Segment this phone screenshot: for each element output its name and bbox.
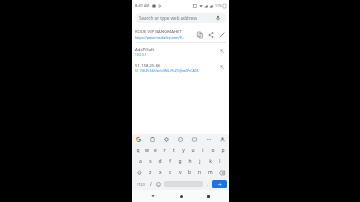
staticText: g <box>178 158 182 165</box>
button[interactable]: Share <box>205 29 216 40</box>
staticText: 11% <box>215 3 222 8</box>
staticText: c <box>169 169 172 176</box>
button[interactable]: c <box>165 167 175 178</box>
button[interactable]: s <box>145 156 155 167</box>
button[interactable]: More options <box>205 136 212 143</box>
button[interactable]: n <box>195 167 205 178</box>
staticText: w <box>145 147 149 154</box>
button[interactable]: v <box>175 167 185 178</box>
staticText: AM <box>144 3 150 8</box>
button[interactable]: Clipboard <box>149 136 156 143</box>
button[interactable]: Insert suggestion <box>218 63 226 71</box>
staticText: 51.158.25.66 <box>135 62 161 68</box>
staticText: j <box>199 158 201 165</box>
staticText: n <box>198 169 202 176</box>
staticText: u <box>191 147 195 154</box>
staticText: https://www.mediafire.com/fi... <box>135 35 185 40</box>
button[interactable]: AdsPiSoft <box>132 43 229 59</box>
staticText: 8:41 <box>135 3 143 8</box>
button[interactable]: a <box>136 156 145 167</box>
staticText: d <box>158 158 162 165</box>
staticText: ••• <box>207 137 211 142</box>
staticText: i <box>202 147 204 154</box>
button[interactable]: Home <box>175 190 187 202</box>
button[interactable]: m <box>205 167 215 178</box>
staticText: v <box>179 169 182 176</box>
staticText: b <box>188 169 192 176</box>
button[interactable]: i <box>198 145 208 156</box>
button[interactable]: f <box>165 156 175 167</box>
staticText: AdsPiSoft <box>135 46 155 52</box>
button[interactable]: Insert suggestion <box>218 47 226 55</box>
button[interactable]: Back <box>147 190 159 202</box>
staticText: t <box>173 147 175 154</box>
button[interactable]: Google search <box>135 136 142 143</box>
button[interactable]: t <box>169 145 178 156</box>
staticText: 10.0.0.1 <box>135 53 147 57</box>
staticText: p <box>221 147 225 154</box>
button[interactable]: Emoji <box>154 179 163 189</box>
staticText: h <box>188 158 192 165</box>
staticText: Search or type web address <box>139 15 198 21</box>
staticText: y <box>182 147 185 154</box>
button[interactable]: Edit <box>216 29 227 40</box>
button[interactable]: d <box>155 156 165 167</box>
staticText: KODE VIP BANGMAHET <box>135 28 182 34</box>
button[interactable]: 51.158.25.66 <box>132 59 229 75</box>
button[interactable]: y <box>178 145 188 156</box>
button[interactable]: Stickers <box>177 136 184 143</box>
staticText: x <box>159 169 162 176</box>
button[interactable]: p <box>218 145 228 156</box>
staticText: r <box>163 147 166 154</box>
button[interactable]: x <box>155 167 165 178</box>
staticText: f <box>169 158 171 165</box>
button[interactable]: l <box>215 156 225 167</box>
button[interactable]: Settings <box>163 136 170 143</box>
button[interactable]: g <box>175 156 185 167</box>
button[interactable]: j <box>195 156 205 167</box>
staticText: e <box>154 147 157 154</box>
button[interactable]: Backspace <box>215 167 228 178</box>
staticText: l <box>219 158 221 165</box>
button[interactable]: Copy <box>194 29 205 40</box>
button[interactable]: Search or type web address <box>135 13 226 23</box>
staticText: q <box>136 147 140 154</box>
button[interactable]: e <box>151 145 160 156</box>
button[interactable]: Voice search <box>214 14 222 22</box>
button[interactable]: r <box>160 145 169 156</box>
button[interactable]: o <box>208 145 218 156</box>
button[interactable]: KODE VIP BANGMAHET <box>132 26 229 43</box>
staticText: s <box>149 158 152 165</box>
button[interactable]: z <box>145 167 155 178</box>
staticText: m <box>208 169 213 176</box>
button[interactable]: Shift <box>133 167 145 178</box>
button[interactable]: Go <box>212 180 227 188</box>
button[interactable]: w <box>142 145 151 156</box>
staticText: / <box>150 181 152 187</box>
button[interactable]: Profile <box>219 136 226 143</box>
staticText: z <box>149 169 152 176</box>
staticText: ?123 <box>137 182 145 187</box>
button[interactable]: b <box>185 167 195 178</box>
staticText: 51.158.25.66/t/ac/vUML-PfcZ1l@ox0PcCADX <box>135 69 199 73</box>
button[interactable]: GIF <box>191 136 198 143</box>
button[interactable]: q <box>133 145 142 156</box>
button[interactable]: ?123 <box>134 179 147 189</box>
button[interactable]: / <box>147 179 154 189</box>
button[interactable]: Recent apps <box>202 190 214 202</box>
button[interactable]: k <box>205 156 215 167</box>
staticText: . <box>207 181 209 187</box>
staticText: k <box>209 158 212 165</box>
button[interactable]: u <box>188 145 198 156</box>
button[interactable]: h <box>185 156 195 167</box>
staticText: o <box>211 147 215 154</box>
button[interactable]: . <box>204 179 212 189</box>
staticText: a <box>139 158 142 165</box>
